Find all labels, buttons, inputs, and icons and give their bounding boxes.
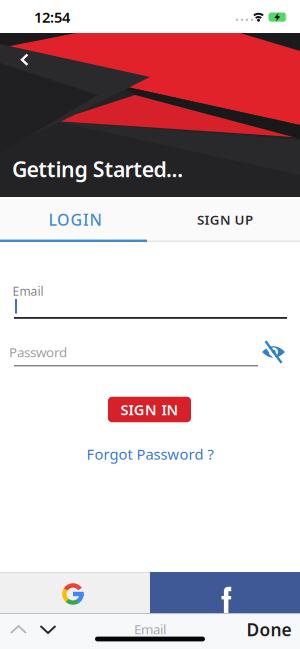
button[interactable]: Forgot Password ? bbox=[70, 439, 230, 469]
staticText: LOGIN bbox=[48, 209, 101, 230]
staticText: Email bbox=[134, 620, 166, 638]
button[interactable]: SIGN UP bbox=[150, 197, 300, 242]
staticText: 12:54 bbox=[34, 7, 70, 27]
staticText: SIGN IN bbox=[120, 400, 179, 419]
button[interactable]: Email bbox=[0, 242, 300, 332]
button[interactable]: Previous field bbox=[6, 618, 30, 640]
staticText: Done bbox=[246, 618, 291, 641]
staticText: Getting Started... bbox=[12, 155, 183, 183]
staticText: Password bbox=[9, 343, 67, 361]
button[interactable]: Sign in with Facebook bbox=[150, 572, 300, 613]
staticText: Email bbox=[12, 283, 43, 299]
staticText: Forgot Password ? bbox=[86, 444, 213, 464]
button[interactable]: Password bbox=[0, 332, 300, 380]
button[interactable]: Back bbox=[0, 33, 44, 77]
staticText: SIGN UP bbox=[197, 211, 253, 228]
button[interactable]: LOGIN bbox=[0, 197, 150, 242]
button[interactable]: Show password bbox=[256, 335, 290, 369]
button[interactable]: SIGN IN bbox=[108, 397, 191, 422]
button[interactable]: Done bbox=[242, 616, 296, 642]
button[interactable]: Sign in with Google bbox=[0, 572, 150, 613]
button[interactable]: Next field bbox=[37, 618, 59, 640]
